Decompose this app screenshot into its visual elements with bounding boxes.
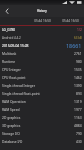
staticText: 2D graphics — [2, 115, 74, 119]
button[interactable]: RAM Operation — [0, 97, 84, 105]
staticText: LG_G780 — [2, 28, 77, 32]
button[interactable]: 3D graphics — [0, 121, 84, 129]
staticText: Database I/O — [2, 139, 76, 143]
button[interactable]: CPU float-point — [0, 73, 84, 81]
staticText: 1163 — [74, 115, 82, 119]
staticText: Runtime — [2, 59, 76, 63]
button[interactable]: 05:44 16:50 — [56, 17, 84, 25]
staticText: RAM Speed — [2, 107, 74, 111]
staticText: 980 — [76, 59, 82, 63]
staticText: 1977 — [74, 107, 82, 111]
staticText: Single-thread float-point — [2, 91, 76, 95]
staticText: 3D graphics — [2, 123, 74, 127]
button[interactable]: Database I/O — [0, 137, 84, 145]
staticText: Single-thread Integer — [2, 83, 74, 87]
staticText: 2761 — [74, 51, 82, 55]
staticText: 05:44 16:50 — [34, 19, 51, 23]
staticText: RAM Operation — [2, 99, 74, 103]
button[interactable]: Single-thread Integer — [0, 81, 84, 89]
button[interactable]: Runtime — [0, 57, 84, 65]
button[interactable]: Storage I/O — [0, 129, 84, 137]
staticText: 63 kB — [74, 36, 82, 40]
button[interactable]: RAM Speed — [0, 105, 84, 113]
button[interactable]: 2D graphics — [0, 113, 84, 121]
staticText: 790 — [76, 131, 82, 135]
staticText: 1462 — [74, 75, 82, 79]
staticText: Storage I/O — [2, 131, 76, 135]
button[interactable]: 05:44 16:50 — [28, 17, 56, 25]
button[interactable]: 2015-05-04 15:28 — [0, 41, 84, 49]
staticText: 1/2 — [77, 28, 82, 32]
staticText: CPU Integer — [2, 67, 74, 71]
button[interactable]: Multitask — [0, 49, 84, 57]
staticText: 4884 — [74, 123, 82, 127]
staticText: 18661 — [66, 42, 82, 49]
staticText: 430 — [76, 139, 82, 143]
staticText: Android 4.4.2 — [2, 36, 74, 40]
staticText: CPU float-point — [2, 75, 74, 79]
button[interactable]: CPU Integer — [0, 65, 84, 73]
staticText: 1535 — [74, 67, 82, 71]
staticText: 1319 — [74, 99, 82, 103]
button[interactable]: Back — [2, 6, 12, 16]
staticText: 2015-05-04 15:28 — [2, 43, 66, 47]
staticText: 05:44 16:50 — [62, 19, 79, 23]
button[interactable]: Single-thread float-point — [0, 89, 84, 97]
staticText: 1390 — [74, 83, 82, 87]
staticText: History — [37, 9, 47, 13]
staticText: 893 — [76, 91, 82, 95]
staticText: Multitask — [2, 51, 74, 55]
